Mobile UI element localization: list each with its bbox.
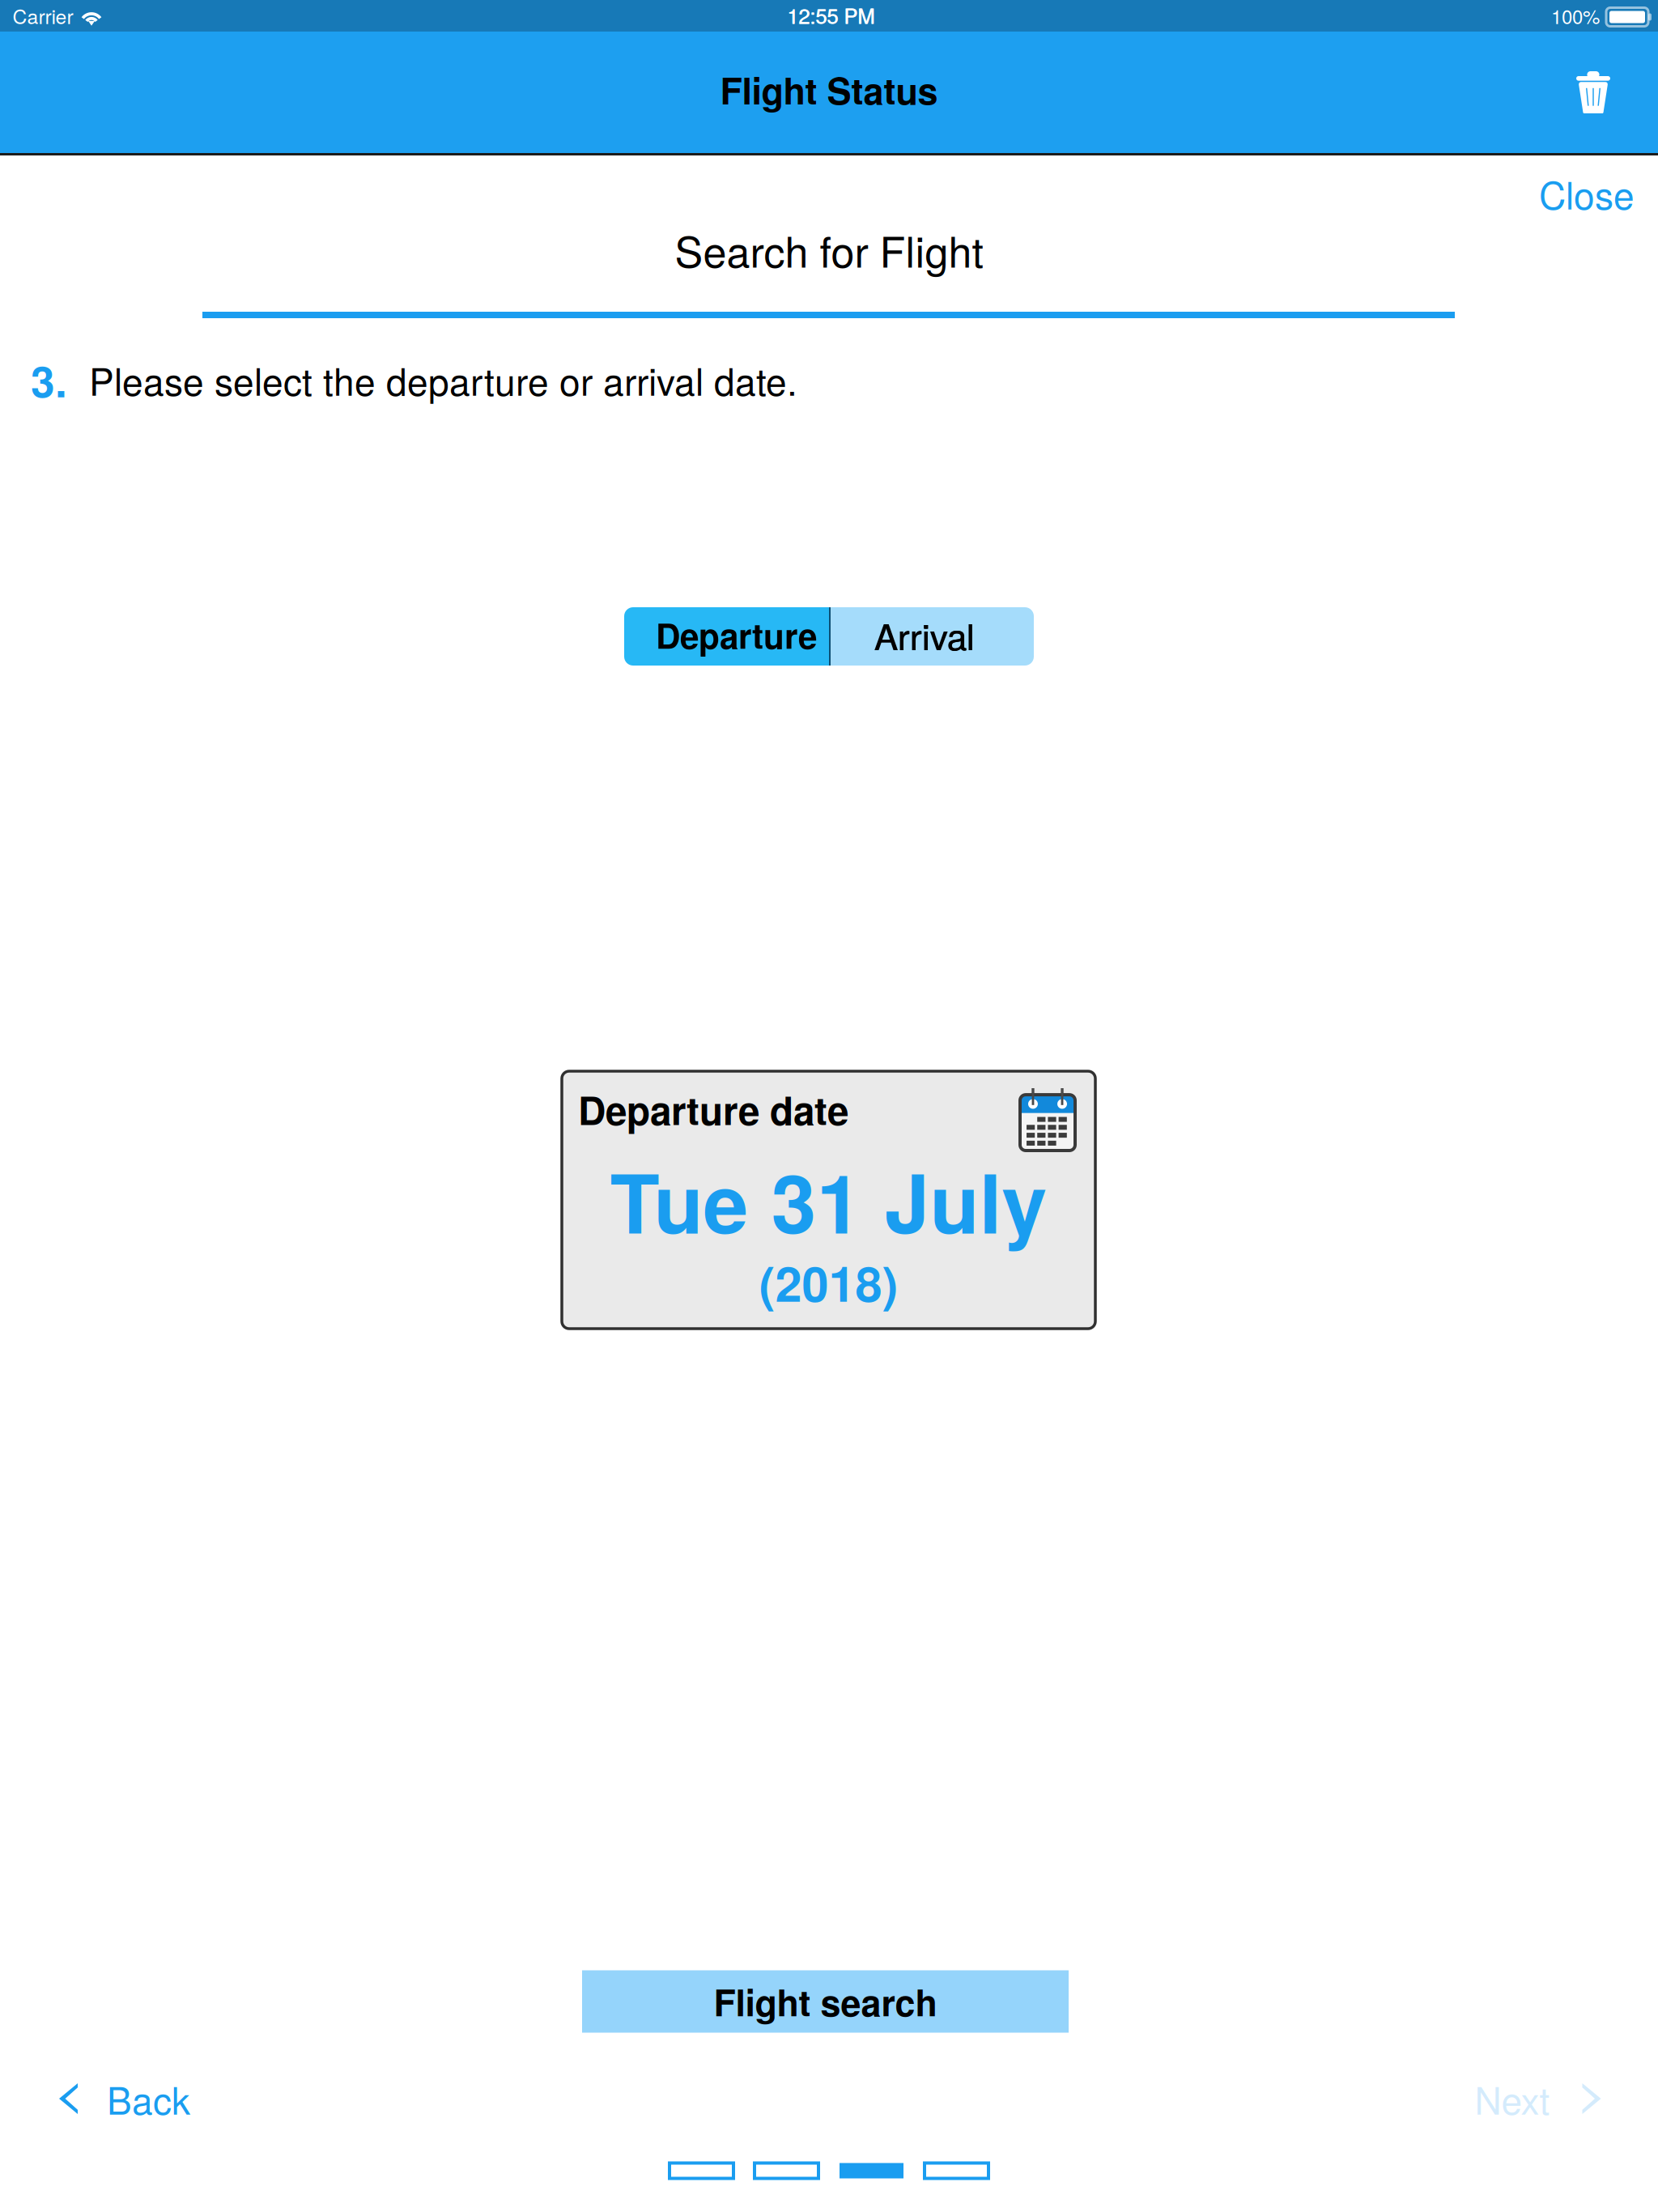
staticText: 100%	[1551, 2, 1600, 30]
staticText: Close	[1539, 167, 1635, 220]
staticText: Search for Flight	[675, 219, 983, 280]
staticText: Departure date	[578, 1082, 848, 1137]
staticText: Back	[107, 2072, 190, 2125]
staticText: (2018)	[759, 1248, 898, 1317]
staticText: Carrier	[13, 1, 73, 30]
staticText: Departure	[656, 610, 817, 659]
button[interactable]: Departure	[624, 607, 829, 666]
button[interactable]: Delete	[1545, 45, 1642, 140]
staticText: Next	[1475, 2072, 1550, 2125]
staticText: 3.	[31, 349, 67, 410]
staticText: 12:55 PM	[787, 0, 874, 30]
staticText: Flight search	[714, 1975, 937, 2027]
button[interactable]: Arrival	[831, 607, 1034, 666]
staticText: Arrival	[874, 609, 974, 660]
staticText: Please select the departure or arrival d…	[89, 353, 797, 406]
staticText: Arrival	[875, 609, 975, 660]
staticText: Tue 31 July	[610, 1142, 1047, 1258]
button[interactable]: Back	[40, 2057, 210, 2140]
staticText: Flight Status	[720, 63, 938, 115]
button[interactable]: Close	[1473, 158, 1635, 229]
staticText: 12:55 PM	[788, 0, 875, 30]
button[interactable]: Flight search	[582, 1970, 1069, 2033]
button[interactable]: Next	[1455, 2057, 1620, 2140]
button[interactable]: Departure date	[562, 1071, 1095, 1329]
